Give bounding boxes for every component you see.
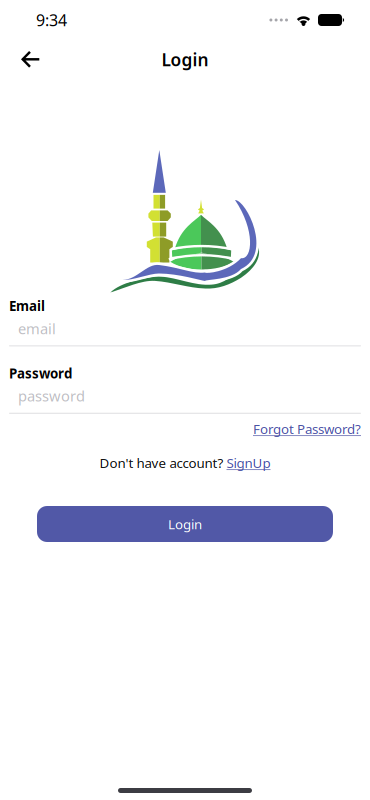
staticText: Don't have account? [99,454,223,472]
button[interactable]: Login [37,506,333,542]
staticText: 9:34 [36,9,67,31]
button[interactable]: Forgot Password? [253,420,361,438]
button[interactable]: SignUp [226,454,270,472]
staticText: Forgot Password? [253,420,361,438]
staticText: email [18,319,56,338]
staticText: password [18,386,85,406]
staticText: Password [9,364,72,382]
staticText: Email [9,297,45,315]
staticText: Login [161,48,208,71]
staticText: Login [168,515,202,533]
staticText: SignUp [226,454,270,472]
button[interactable]: Back [0,41,54,78]
